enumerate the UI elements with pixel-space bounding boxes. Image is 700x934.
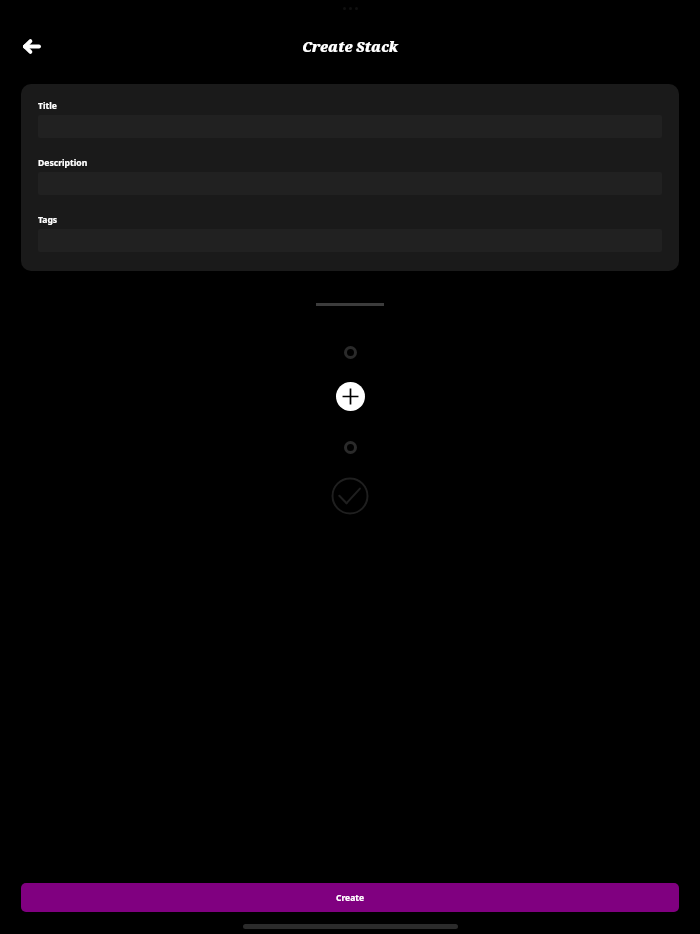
button[interactable]: Done [331, 477, 369, 515]
button[interactable]: Back [12, 26, 52, 66]
staticText: Create Stack [302, 37, 398, 56]
staticText: Description [38, 157, 88, 169]
staticText: Title [38, 100, 57, 112]
button[interactable]: Create [21, 883, 679, 912]
staticText: Create [336, 892, 365, 904]
button[interactable]: Add [336, 382, 365, 411]
staticText: Tags [38, 214, 58, 226]
